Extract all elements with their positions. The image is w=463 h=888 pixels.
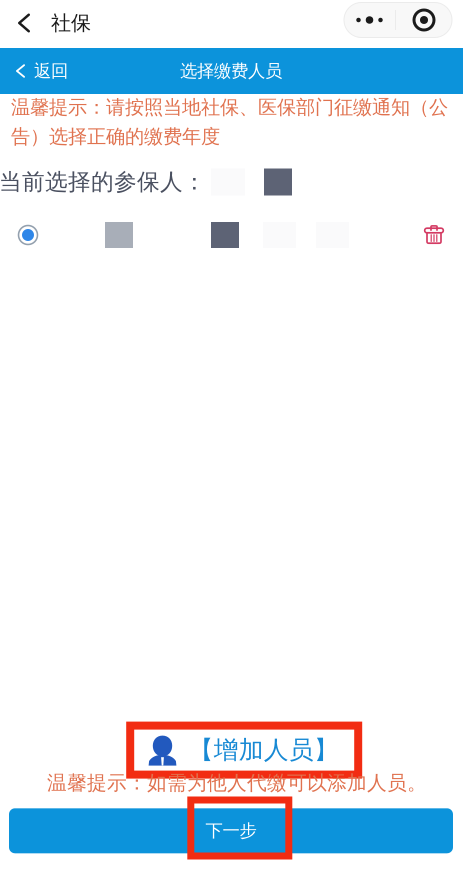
staticText: 下一步: [205, 820, 256, 841]
button[interactable]: 社保: [0, 1, 130, 45]
button[interactable]: [0, 218, 463, 252]
staticText: 温馨提示：请按照当地社保、医保部门征缴通知（公: [11, 95, 448, 119]
staticText: 告）选择正确的缴费年度: [11, 124, 220, 149]
staticText: 返回: [34, 60, 68, 82]
button[interactable]: 【增加人员】: [130, 726, 358, 775]
button[interactable]: 下一步: [9, 808, 453, 853]
staticText: 温馨提示：如需为他人代缴可以添加人员。: [47, 771, 427, 795]
staticText: 社保: [51, 11, 91, 35]
staticText: 选择缴费人员: [180, 60, 282, 82]
staticText: 当前选择的参保人：: [0, 168, 206, 196]
button[interactable]: More options: [344, 2, 452, 37]
staticText: 【增加人员】: [189, 734, 339, 766]
button[interactable]: 返回: [0, 48, 90, 94]
